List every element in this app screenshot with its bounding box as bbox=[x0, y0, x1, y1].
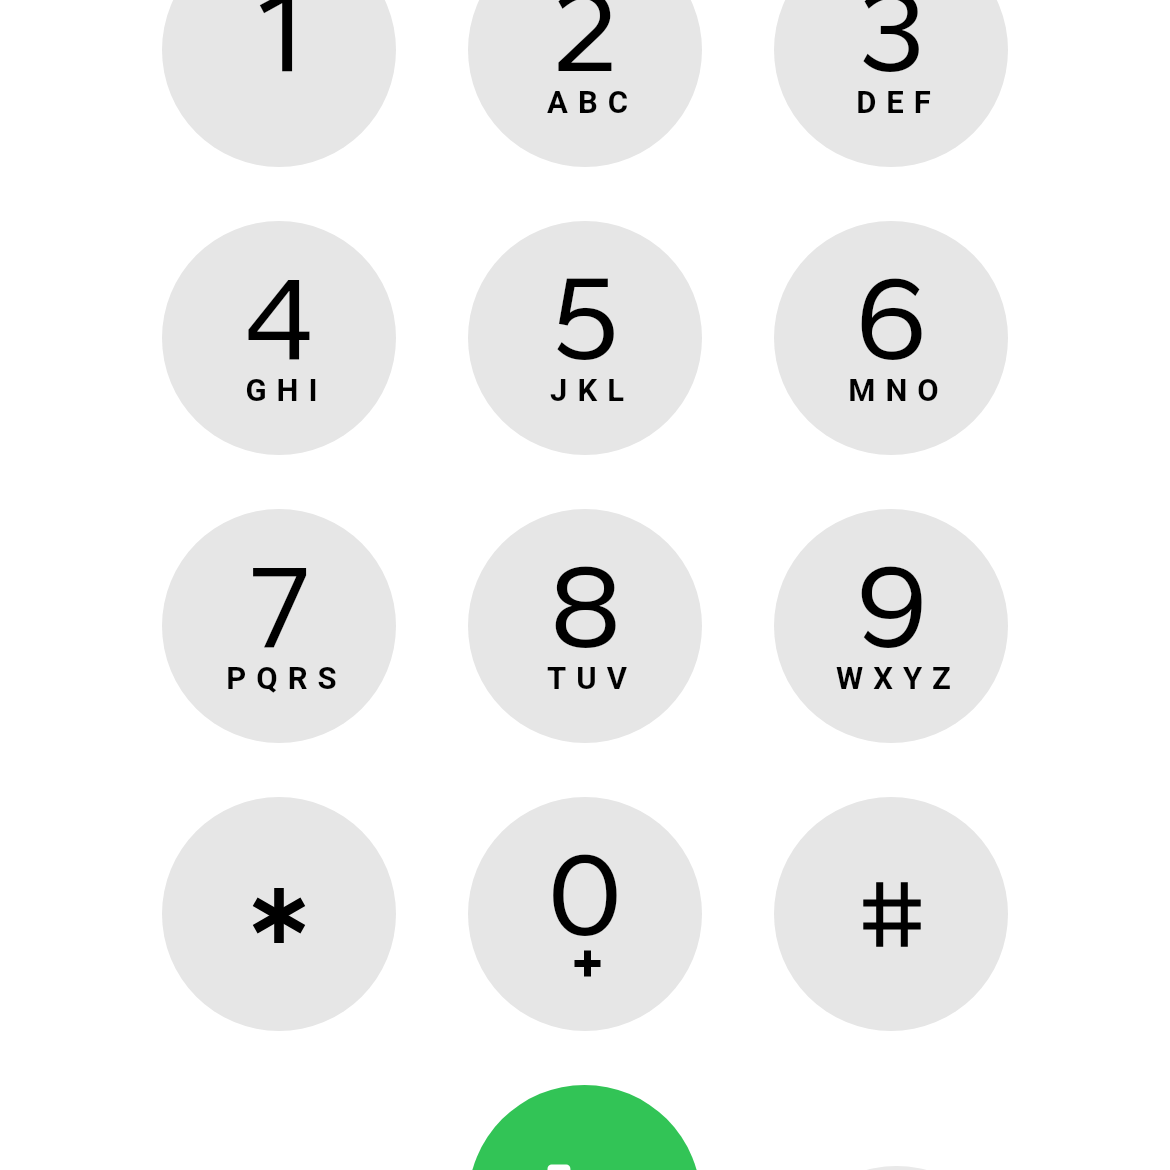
staticText: WXYZ bbox=[836, 660, 961, 696]
staticText: 1 bbox=[256, 0, 302, 101]
button[interactable]: 0 bbox=[468, 797, 702, 1031]
button[interactable]: 6 bbox=[774, 221, 1008, 455]
button[interactable]: Call bbox=[468, 1085, 701, 1170]
staticText: 5 bbox=[551, 247, 620, 389]
staticText: MNO bbox=[848, 372, 949, 408]
staticText: 8 bbox=[549, 535, 622, 677]
button[interactable]: 3 bbox=[774, 0, 1008, 167]
staticText: 0 bbox=[547, 823, 623, 965]
button[interactable]: 2 bbox=[468, 0, 702, 167]
staticText: 7 bbox=[249, 535, 310, 677]
staticText: 3 bbox=[857, 0, 925, 101]
button[interactable]: 8 bbox=[468, 509, 702, 743]
staticText: JKL bbox=[550, 372, 634, 408]
button[interactable]: 9 bbox=[774, 509, 1008, 743]
staticText: 2 bbox=[552, 0, 618, 101]
staticText: TUV bbox=[547, 660, 637, 696]
button[interactable]: Backspace bbox=[780, 1166, 1013, 1170]
staticText: DEF bbox=[856, 84, 941, 120]
button[interactable]: # bbox=[774, 797, 1008, 1031]
staticText: 6 bbox=[855, 247, 928, 389]
button[interactable]: 1 bbox=[162, 0, 396, 167]
button[interactable]: 7 bbox=[162, 509, 396, 743]
staticText: 9 bbox=[855, 535, 928, 677]
button[interactable]: 5 bbox=[468, 221, 702, 455]
staticText: ABC bbox=[547, 84, 638, 120]
staticText: GHI bbox=[245, 372, 328, 408]
staticText: PQRS bbox=[226, 660, 347, 696]
button[interactable]: * bbox=[162, 797, 396, 1031]
staticText: 4 bbox=[242, 247, 316, 389]
button[interactable]: 4 bbox=[162, 221, 396, 455]
